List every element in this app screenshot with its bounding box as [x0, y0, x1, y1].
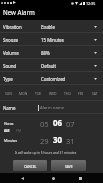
staticText: Volume — [3, 50, 19, 56]
button[interactable]: TUE — [31, 85, 46, 101]
button[interactable]: THU — [60, 85, 74, 101]
button[interactable]: WED — [46, 85, 60, 101]
button[interactable]: Snooze — [0, 33, 103, 46]
staticText: CANCEL — [24, 164, 37, 168]
button[interactable]: Recent apps — [76, 174, 85, 183]
button[interactable]: CANCEL — [13, 160, 47, 171]
staticText: FRI — [78, 91, 84, 96]
button[interactable]: SAVE — [51, 160, 86, 171]
staticText: Sound — [3, 63, 17, 69]
button[interactable]: Vibration — [0, 20, 103, 33]
staticText: 30 — [53, 135, 63, 146]
staticText: Customized — [41, 76, 66, 82]
staticText: Enable — [41, 24, 55, 30]
staticText: SAVE — [65, 164, 73, 168]
button[interactable]: SUN — [1, 85, 16, 101]
staticText: 12:35 — [86, 1, 96, 6]
staticText: 29 — [40, 136, 49, 146]
staticText: Default — [41, 63, 57, 69]
staticText: 07 — [66, 119, 75, 129]
staticText: WED — [49, 91, 57, 96]
staticText: Horas — [4, 121, 14, 126]
staticText: 06 — [53, 118, 63, 129]
staticText: TUE — [35, 91, 42, 96]
staticText: Type — [3, 76, 13, 82]
staticText: Minutos — [4, 138, 18, 143]
staticText: Name — [3, 105, 16, 111]
staticText: 05 — [40, 119, 49, 129]
button[interactable]: Home — [49, 174, 58, 183]
staticText: 31 — [66, 136, 75, 146]
staticText: PM — [16, 128, 22, 133]
button[interactable]: Type — [0, 72, 103, 85]
button[interactable]: Sound — [0, 59, 103, 72]
staticText: AM — [4, 128, 10, 133]
button[interactable]: Back — [18, 174, 27, 183]
staticText: New Alarm — [3, 8, 35, 16]
staticText: THU — [64, 91, 71, 96]
staticText: It will wake up in 5 hours and 31 minute… — [15, 151, 77, 155]
staticText: MON — [19, 91, 28, 96]
staticText: SAT — [92, 91, 98, 96]
button[interactable]: FRI — [74, 85, 88, 101]
staticText: SUN — [5, 91, 12, 96]
staticText: Vibration — [3, 24, 22, 30]
button[interactable]: SAT — [88, 85, 102, 101]
button[interactable]: Volume — [0, 46, 103, 59]
button[interactable]: MON — [16, 85, 31, 101]
staticText: 88% — [41, 50, 50, 56]
staticText: 15 Minutes — [41, 37, 64, 43]
staticText: Snooze — [3, 37, 18, 43]
staticText: Alarm name — [40, 105, 65, 111]
